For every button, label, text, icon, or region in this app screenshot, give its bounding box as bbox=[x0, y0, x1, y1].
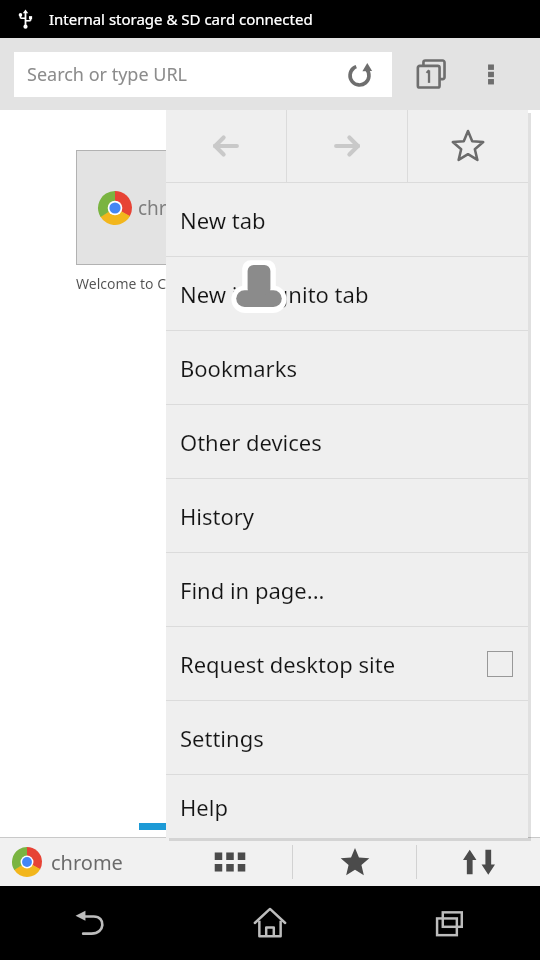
button[interactable]: Forward bbox=[287, 110, 407, 182]
button[interactable]: Request desktop site bbox=[166, 627, 528, 700]
button[interactable]: Reload page bbox=[338, 54, 380, 96]
button[interactable]: Help bbox=[166, 775, 528, 838]
button[interactable]: Recent apps bbox=[360, 886, 540, 960]
staticText: History bbox=[180, 501, 255, 531]
staticText: Other devices bbox=[180, 427, 322, 457]
staticText: New incognito tab bbox=[180, 279, 369, 309]
button[interactable]: More options bbox=[464, 47, 518, 101]
button[interactable]: Sync bbox=[417, 838, 540, 886]
button[interactable]: Tabs bbox=[404, 47, 458, 101]
staticText: Search or type URL bbox=[27, 62, 188, 87]
button[interactable]: Home bbox=[180, 886, 360, 960]
staticText: Welcome to Chrome bbox=[76, 274, 210, 293]
button[interactable]: Bookmarks bbox=[293, 838, 416, 886]
button[interactable]: New incognito tab bbox=[166, 257, 528, 330]
staticText: Bookmarks bbox=[180, 353, 297, 383]
button[interactable]: Bookmarks bbox=[166, 331, 528, 404]
staticText: Settings bbox=[180, 723, 264, 753]
button[interactable]: Back bbox=[166, 110, 286, 182]
staticText: Find in page... bbox=[180, 575, 325, 605]
button[interactable]: chrome bbox=[76, 150, 228, 265]
button[interactable]: Settings bbox=[166, 701, 528, 774]
button[interactable]: New tab bbox=[166, 183, 528, 256]
staticText: Internal storage & SD card connected bbox=[49, 9, 313, 29]
staticText: New tab bbox=[180, 205, 266, 235]
button[interactable]: Apps bbox=[168, 838, 292, 886]
button[interactable]: chrome bbox=[0, 838, 168, 886]
button[interactable]: Find in page... bbox=[166, 553, 528, 626]
staticText: Help bbox=[180, 792, 228, 822]
button[interactable]: History bbox=[166, 479, 528, 552]
button[interactable]: Other devices bbox=[166, 405, 528, 478]
staticText: chrome bbox=[138, 195, 207, 221]
button[interactable]: Search or type URL bbox=[14, 52, 392, 97]
button[interactable]: Back bbox=[0, 886, 180, 960]
button[interactable]: Bookmark this page bbox=[408, 110, 528, 182]
staticText: Request desktop site bbox=[180, 649, 396, 679]
staticText: chrome bbox=[51, 849, 123, 876]
